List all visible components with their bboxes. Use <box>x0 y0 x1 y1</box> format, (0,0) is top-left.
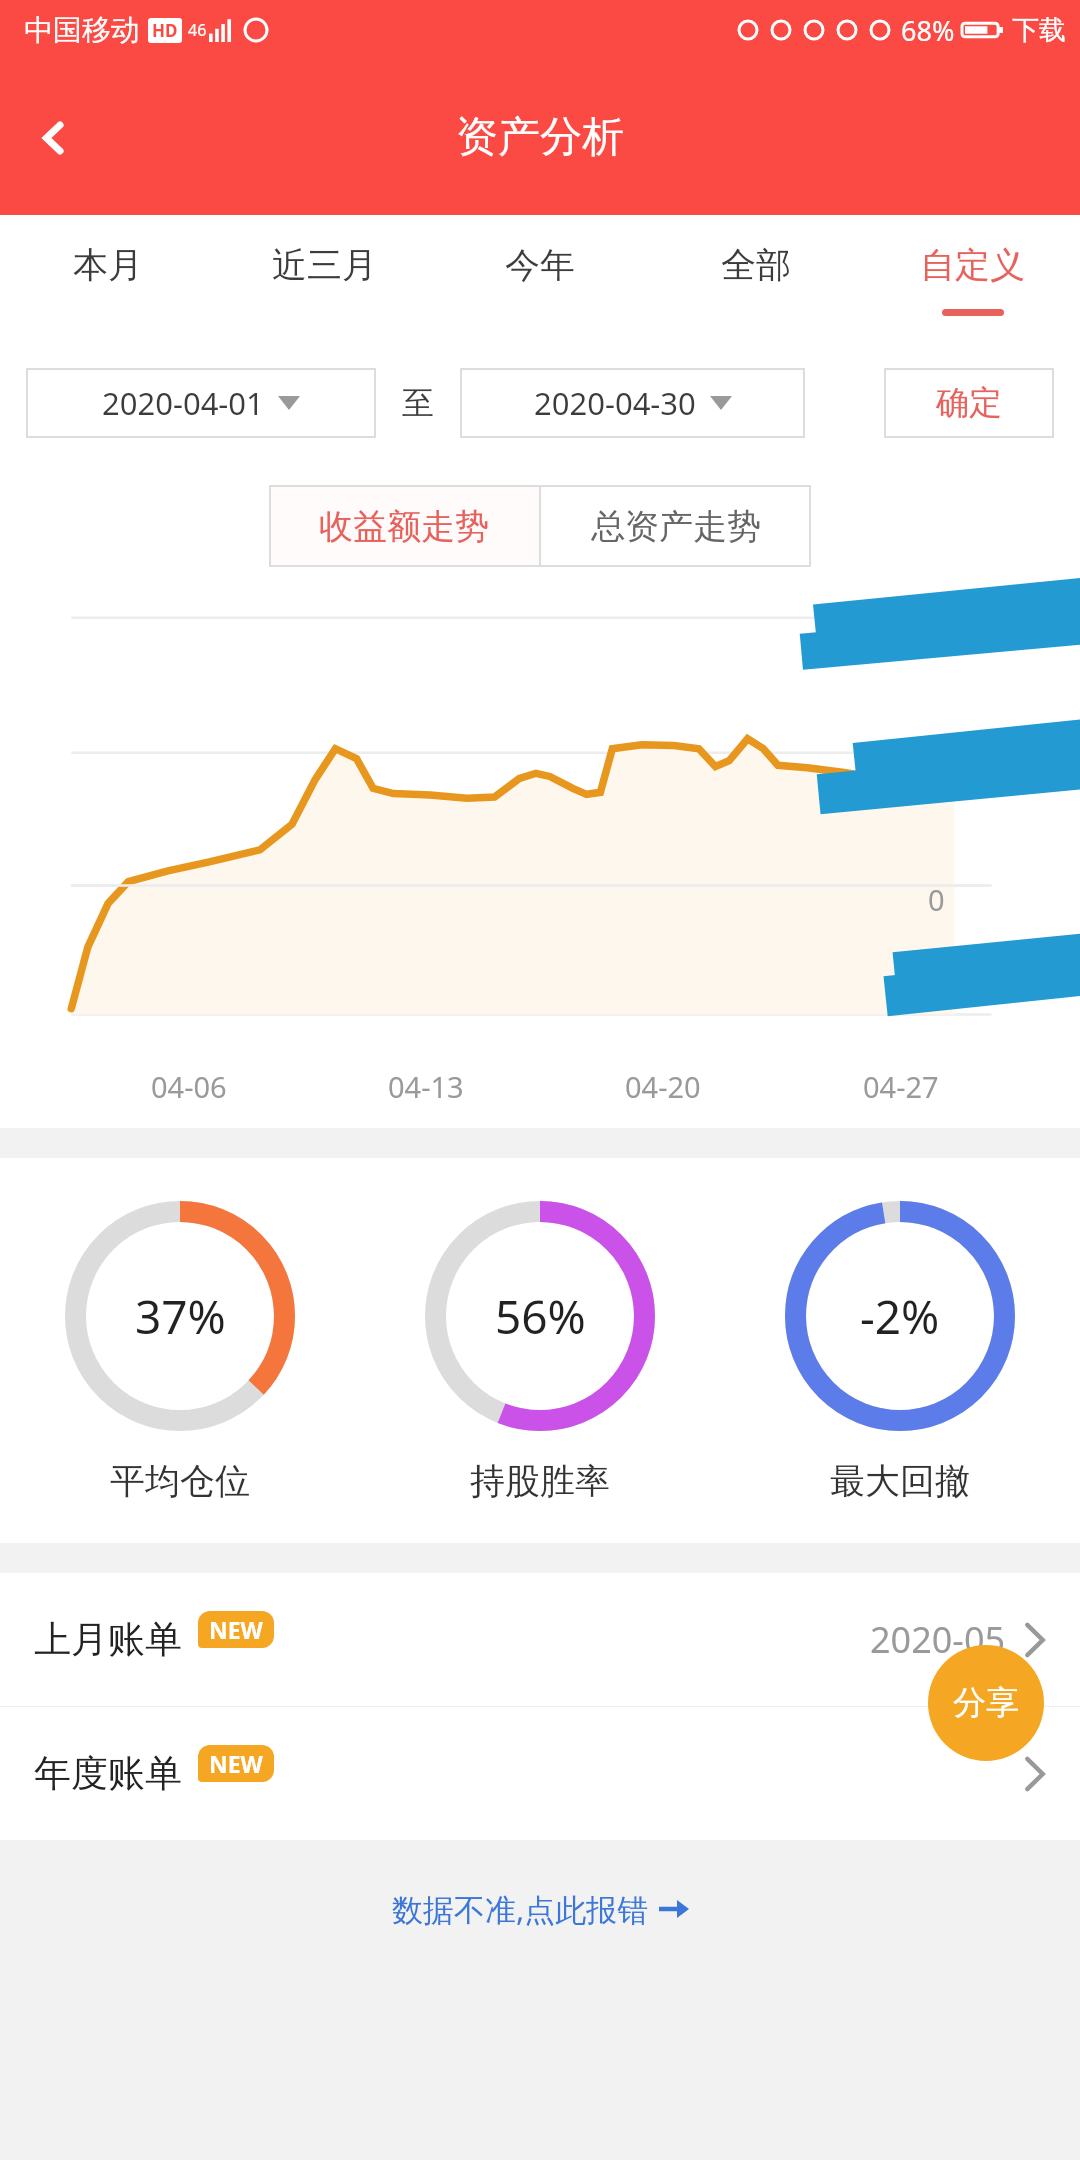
button[interactable]: 全部 <box>648 215 864 343</box>
button[interactable]: 2020-04-30 <box>460 368 805 438</box>
button[interactable]: 收益额走势 <box>269 485 539 567</box>
button[interactable]: 数据不准,点此报错 <box>384 1884 697 1934</box>
staticText: 46 <box>188 19 207 41</box>
button[interactable]: 本月 <box>0 215 216 343</box>
button[interactable]: 自定义 <box>864 215 1080 343</box>
staticText: 数据不准,点此报错 <box>392 1888 649 1930</box>
button[interactable]: 今年 <box>432 215 648 343</box>
staticText: 本月 <box>73 243 143 287</box>
staticText: 确定 <box>936 382 1002 424</box>
staticText: NEW <box>209 1614 263 1645</box>
staticText: 上月账单 <box>34 1616 182 1663</box>
staticText: 平均仓位 <box>110 1459 250 1503</box>
staticText: 年度账单 <box>34 1750 182 1797</box>
staticText: 37% <box>135 1285 226 1348</box>
staticText: 2020-04-30 <box>534 382 696 424</box>
staticText: 68% <box>901 12 955 49</box>
staticText: 04-20 <box>625 1067 701 1106</box>
staticText: 至 <box>402 383 434 423</box>
staticText: 收益额走势 <box>319 505 489 548</box>
staticText: 56% <box>495 1285 586 1348</box>
staticText: 2020-04-01 <box>102 382 264 424</box>
staticText: 2020-05 <box>870 1615 1006 1664</box>
staticText: HD <box>152 19 178 42</box>
button[interactable]: 返回 <box>8 92 100 184</box>
button[interactable]: 年度账单 <box>0 1707 1080 1840</box>
staticText: NEW <box>209 1748 263 1779</box>
staticText: -2% <box>860 1285 940 1348</box>
button[interactable]: 近三月 <box>216 215 432 343</box>
staticText: 最大回撤 <box>830 1459 970 1503</box>
button[interactable]: 2020-04-01 <box>26 368 376 438</box>
staticText: 自定义 <box>920 243 1025 287</box>
staticText: 04-13 <box>388 1067 464 1106</box>
button[interactable]: 确定 <box>884 368 1054 438</box>
button[interactable]: 总资产走势 <box>541 485 811 567</box>
staticText: 04-06 <box>151 1067 227 1106</box>
staticText: 总资产走势 <box>591 505 761 548</box>
staticText: 0 <box>928 880 945 919</box>
staticText: 04-27 <box>863 1067 939 1106</box>
staticText: 分享 <box>953 1682 1019 1724</box>
staticText: 下载 <box>1012 13 1066 47</box>
staticText: 资产分析 <box>456 111 624 164</box>
staticText: 持股胜率 <box>470 1459 610 1503</box>
button[interactable]: 上月账单 <box>0 1573 1080 1706</box>
staticText: 近三月 <box>272 243 377 287</box>
button[interactable]: 分享 <box>928 1645 1044 1761</box>
staticText: 今年 <box>505 243 575 287</box>
staticText: 中国移动 <box>24 12 140 49</box>
staticText: 全部 <box>721 243 791 287</box>
